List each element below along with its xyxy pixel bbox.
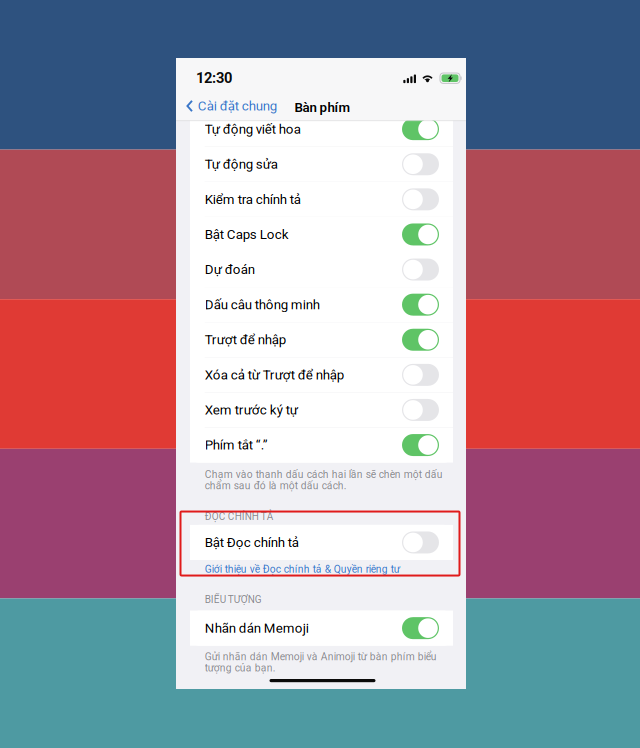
staticText: Tự động sửa <box>205 156 278 172</box>
button[interactable]: Tự động viết hoa <box>190 112 453 147</box>
staticText: Tự động viết hoa <box>205 121 301 137</box>
staticText: tượng của bạn. <box>205 662 276 674</box>
staticText: Giới thiệu về Đọc chính tả & Quyền riêng… <box>205 563 400 575</box>
staticText: Xóa cả từ Trượt để nhập <box>205 367 344 383</box>
staticText: Xem trước ký tự <box>205 402 298 418</box>
button[interactable]: Bật Đọc chính tả <box>190 525 453 560</box>
staticText: Bật Caps Lock <box>205 227 289 242</box>
staticText: Bàn phím <box>294 100 350 115</box>
staticText: Cài đặt chung <box>198 98 277 114</box>
button[interactable]: Trượt để nhập <box>190 322 453 357</box>
staticText: ĐỌC CHÍNH TẢ <box>205 511 274 522</box>
button[interactable]: Dấu câu thông minh <box>190 287 453 322</box>
button[interactable]: Xóa cả từ Trượt để nhập <box>190 357 453 392</box>
button[interactable]: Xem trước ký tự <box>190 392 453 427</box>
staticText: BIỂU TƯỢNG <box>205 594 262 605</box>
staticText: Chạm vào thanh dấu cách hai lần sẽ chèn … <box>205 468 443 480</box>
staticText: Dự đoán <box>205 262 255 277</box>
staticText: Kiểm tra chính tả <box>205 191 301 207</box>
staticText: Gửi nhãn dán Memoji và Animoji từ bàn ph… <box>205 651 437 663</box>
staticText: Phím tắt “.” <box>205 437 268 453</box>
staticText: Bật Đọc chính tả <box>205 535 299 550</box>
button[interactable]: Dự đoán <box>190 252 453 287</box>
button[interactable]: Cài đặt chung <box>176 58 286 78</box>
staticText: 12:30 <box>196 69 232 87</box>
button[interactable]: Kiểm tra chính tả <box>190 182 453 217</box>
staticText: chấm sau đó là một dấu cách. <box>205 480 347 492</box>
button[interactable]: Tự động sửa <box>190 147 453 182</box>
button[interactable]: Bật Caps Lock <box>190 217 453 252</box>
staticText: Dấu câu thông minh <box>205 297 320 312</box>
button[interactable]: Phím tắt “.” <box>190 427 453 463</box>
staticText: Trượt để nhập <box>205 332 286 347</box>
button[interactable]: Nhãn dán Memoji <box>190 611 453 646</box>
staticText: Nhãn dán Memoji <box>205 620 309 636</box>
